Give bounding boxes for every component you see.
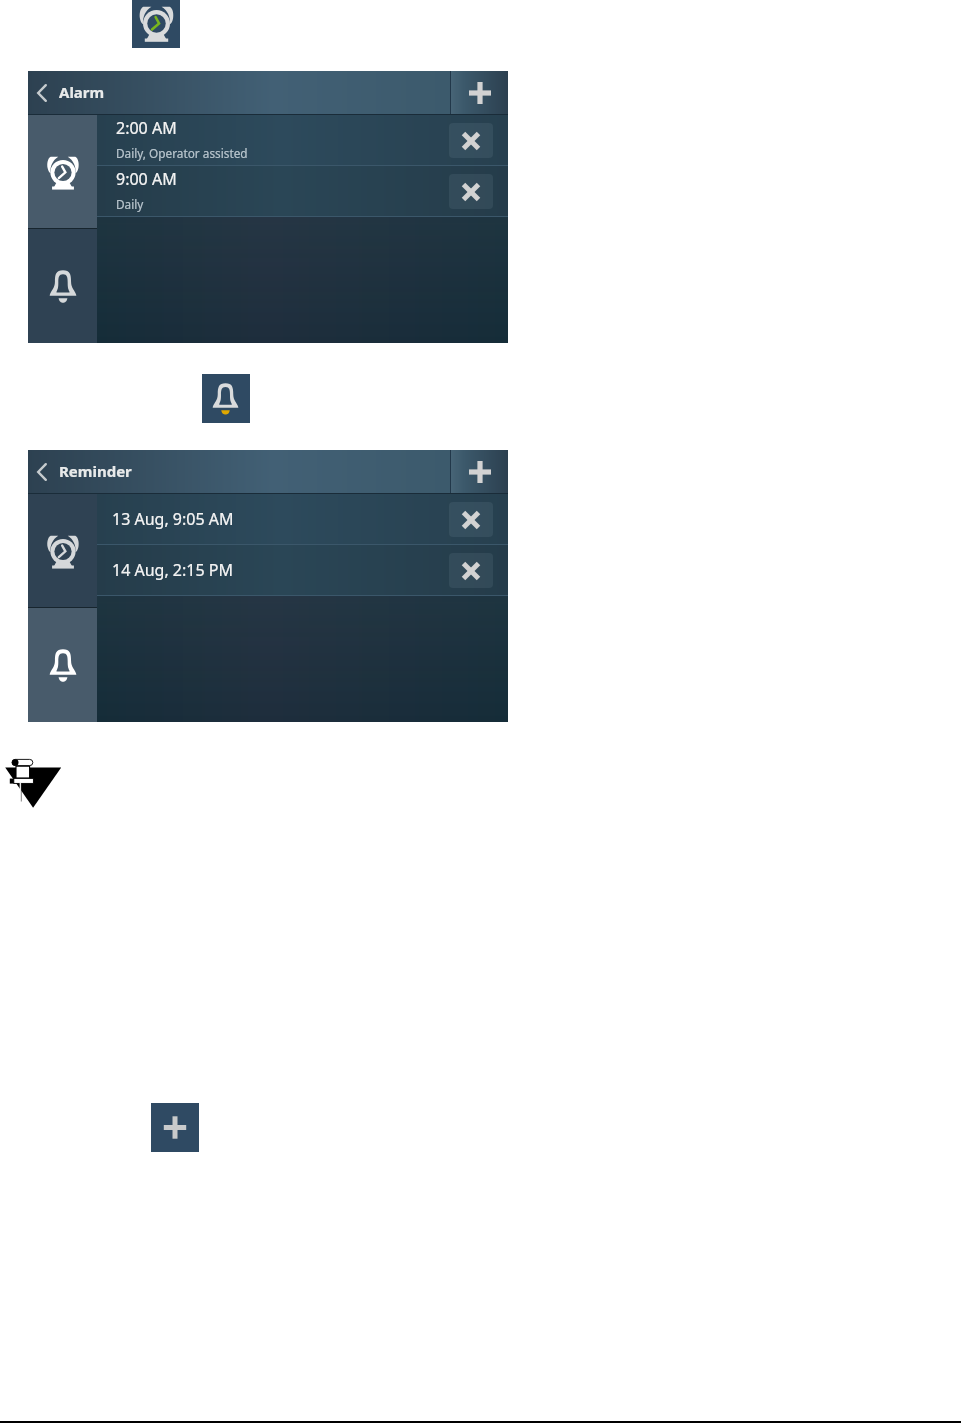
button[interactable]: Delete [449,174,493,209]
staticText: 9:00 AM [116,168,177,190]
staticText: Daily, Operator assisted [116,145,248,161]
button[interactable]: Alarm [28,71,450,115]
button[interactable]: 13 Aug, 9:05 AM [97,494,508,544]
staticText: Reminder [59,461,132,481]
staticText: 2:00 AM [116,117,177,139]
button[interactable]: Add [451,71,508,115]
button[interactable]: Alarms tab [28,494,97,607]
button[interactable]: Reminders tab [28,608,97,722]
button[interactable]: 2:00 AM [97,115,508,165]
button[interactable]: Reminders tab [28,229,97,343]
staticText: Alarm [59,82,105,102]
staticText: 13 Aug, 9:05 AM [112,508,234,530]
button[interactable]: Add [451,450,508,494]
button[interactable]: Reminder app icon [202,374,250,423]
staticText: 14 Aug, 2:15 PM [112,559,233,581]
button[interactable]: 14 Aug, 2:15 PM [97,545,508,595]
button[interactable]: Delete [449,502,493,537]
button[interactable]: Add [151,1103,199,1152]
button[interactable]: 9:00 AM [97,166,508,216]
button[interactable]: Reminder [28,450,450,494]
staticText: Daily [116,196,144,212]
button[interactable]: Delete [449,123,493,158]
button[interactable]: Alarms tab [28,115,97,228]
button[interactable]: Alarm app icon [132,0,180,48]
button[interactable]: Delete [449,553,493,588]
